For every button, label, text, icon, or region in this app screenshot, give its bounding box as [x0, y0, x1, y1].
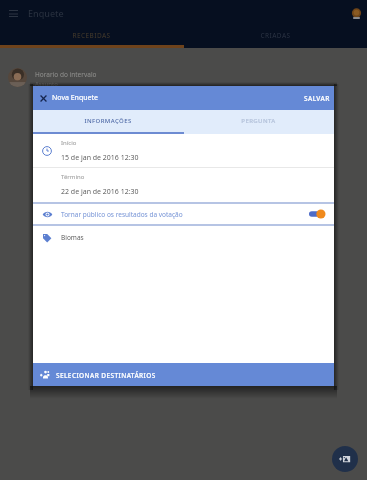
staticText: PERGUNTA — [241, 117, 276, 125]
staticText: Horario do intervalo — [35, 70, 97, 79]
staticText: Nova Enquete — [52, 93, 98, 103]
staticText: SELECIONAR DESTINATÁRIOS — [56, 371, 156, 380]
staticText: INFORMAÇÕES — [84, 117, 132, 125]
staticText: 22 de jan de 2016 12:30 — [61, 187, 139, 197]
staticText: CRIADAS — [260, 31, 291, 40]
button[interactable]: Account — [350, 7, 362, 19]
button[interactable]: CRIADAS — [183, 25, 367, 48]
staticText: Término — [61, 173, 85, 181]
button[interactable]: Início — [33, 134, 334, 167]
staticText: Enquete — [28, 7, 64, 19]
staticText: RECEBIDAS — [72, 31, 111, 40]
button[interactable]: New poll — [332, 446, 358, 472]
staticText: Assunto — [35, 80, 58, 88]
button[interactable]: RECEBIDAS — [0, 25, 183, 48]
button[interactable]: Tornar público os resultados da votação — [33, 204, 334, 224]
staticText: Tornar público os resultados da votação — [61, 210, 183, 219]
staticText: 15 de jan de 2016 12:30 — [61, 153, 139, 163]
button[interactable]: SALVAR — [300, 86, 334, 110]
staticText: Início — [61, 139, 77, 147]
button[interactable]: Término — [33, 168, 334, 202]
staticText: Biomas — [61, 233, 84, 242]
button[interactable]: SELECIONAR DESTINATÁRIOS — [33, 363, 334, 386]
button[interactable]: Open navigation menu — [4, 4, 22, 22]
button[interactable]: PERGUNTA — [183, 110, 334, 134]
button[interactable]: Close — [35, 90, 51, 106]
button[interactable]: Biomas — [33, 226, 334, 249]
button[interactable]: INFORMAÇÕES — [33, 110, 183, 134]
staticText: SALVAR — [304, 94, 330, 103]
button[interactable]: Horario do intervalo — [0, 48, 367, 94]
